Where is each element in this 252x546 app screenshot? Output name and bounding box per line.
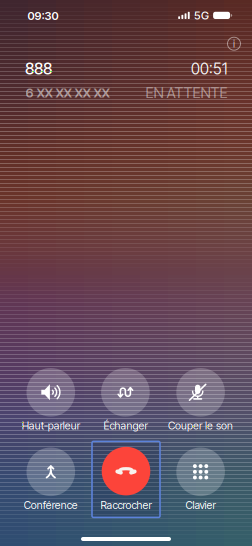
staticText: 09:30 xyxy=(27,9,58,23)
staticText: Conférence xyxy=(24,499,78,511)
button[interactable]: Haut-parleur xyxy=(13,367,88,434)
staticText: Échanger xyxy=(103,419,147,432)
staticText: Couper le son xyxy=(168,419,233,432)
staticText: 888 xyxy=(25,59,52,78)
button[interactable]: Informations sur l'appel xyxy=(221,31,247,57)
staticText: Clavier xyxy=(186,499,216,511)
staticText: i xyxy=(233,37,235,50)
button[interactable]: Raccrocher xyxy=(92,441,160,517)
button[interactable]: Conférence xyxy=(13,446,88,513)
staticText: Haut-parleur xyxy=(22,419,80,432)
staticText: EN ATTENTE xyxy=(145,84,227,102)
button[interactable]: Clavier xyxy=(163,446,238,513)
staticText: 6 XX XX XX XX xyxy=(25,85,109,101)
button[interactable]: Couper le son xyxy=(163,367,238,434)
staticText: Raccrocher xyxy=(100,499,151,511)
button[interactable]: Échanger xyxy=(88,367,163,434)
staticText: 5G xyxy=(194,8,209,22)
staticText: 00:51 xyxy=(191,59,227,78)
